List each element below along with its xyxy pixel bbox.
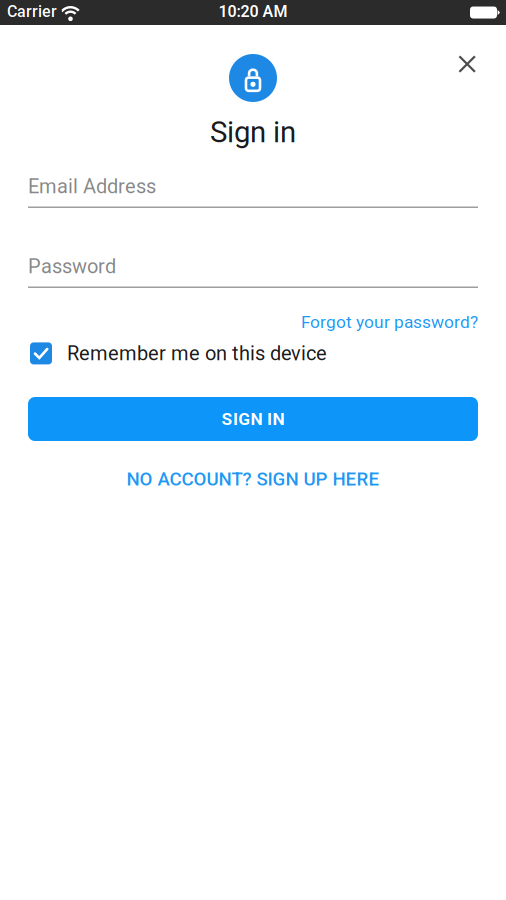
button[interactable]: Forgot your password? <box>301 302 478 342</box>
button[interactable]: Remember me on this device <box>30 342 327 365</box>
staticText: NO ACCOUNT? SIGN UP HERE <box>126 468 379 490</box>
staticText: SIGN IN <box>222 409 284 429</box>
staticText: Remember me on this device <box>67 342 327 365</box>
staticText: Sign in <box>210 115 296 149</box>
button[interactable]: SIGN IN <box>28 397 478 441</box>
staticText: Email Address <box>28 175 156 198</box>
staticText: Password <box>28 255 116 278</box>
button[interactable]: Email Address <box>28 166 478 208</box>
staticText: 10:20 AM <box>218 2 287 21</box>
button[interactable]: Close <box>448 45 486 83</box>
staticText: Carrier <box>7 2 57 21</box>
button[interactable]: NO ACCOUNT? SIGN UP HERE <box>63 459 443 499</box>
staticText: Forgot your password? <box>301 312 478 332</box>
button[interactable]: Password <box>28 246 478 288</box>
